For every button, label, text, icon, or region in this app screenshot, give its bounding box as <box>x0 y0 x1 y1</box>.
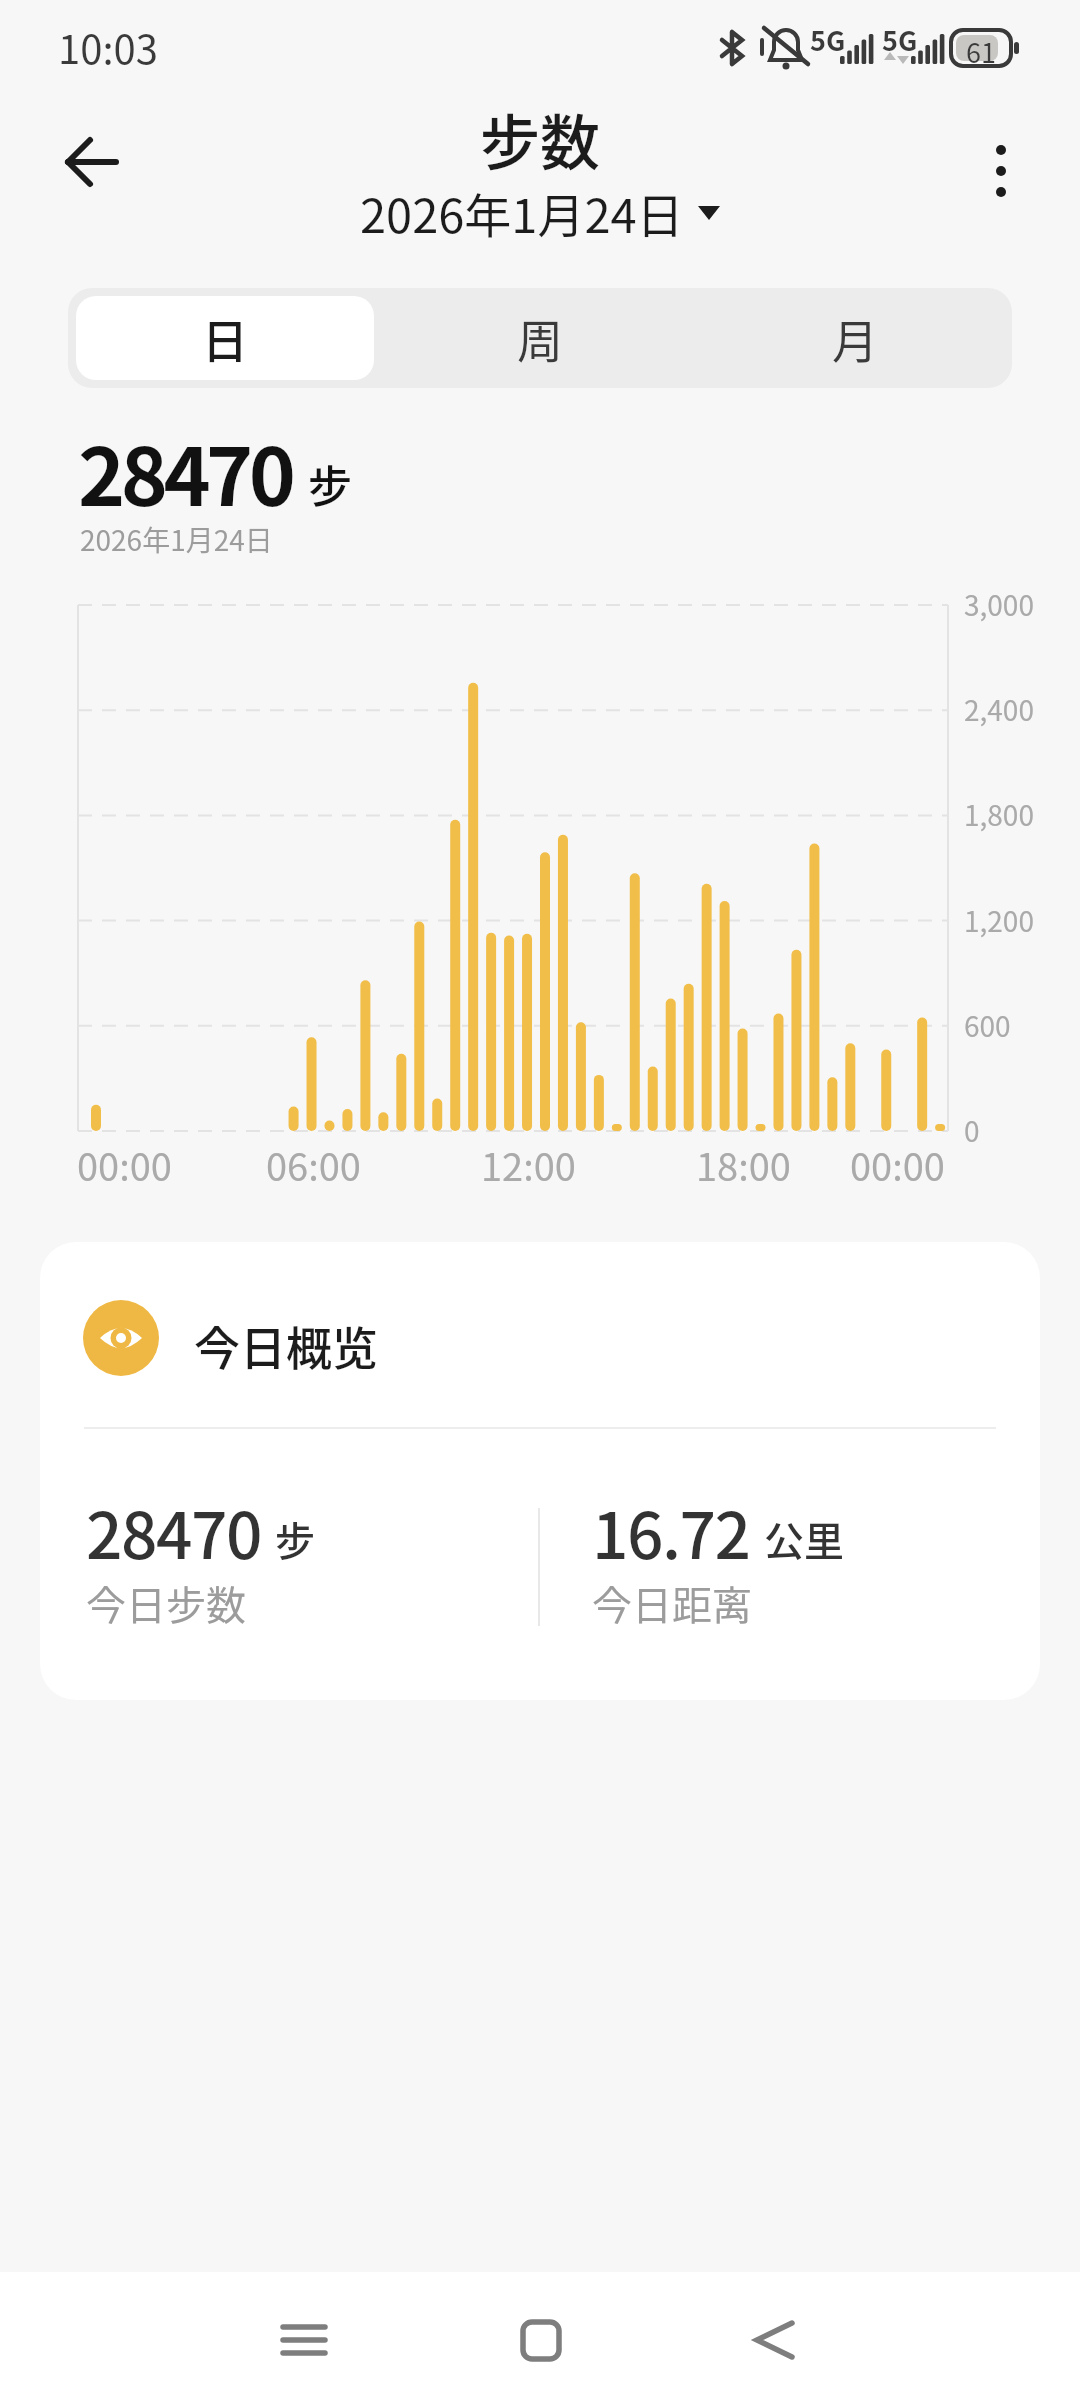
staticText: 2026年1月24日 <box>80 519 273 560</box>
staticText: 步数 <box>480 95 600 182</box>
staticText: 1,200 <box>964 900 1034 941</box>
staticText: 2026年1月24日 <box>360 178 684 246</box>
staticText: 步 <box>308 452 352 516</box>
staticText: 3,000 <box>964 584 1034 625</box>
button[interactable] <box>260 2296 350 2376</box>
staticText: 周 <box>517 305 563 372</box>
button[interactable] <box>496 2296 586 2376</box>
staticText: 步 <box>275 1510 315 1568</box>
staticText: 10:03 <box>58 18 158 76</box>
staticText: 今日距离 <box>592 1574 752 1632</box>
staticText: 月 <box>832 305 878 372</box>
staticText: 公里 <box>764 1510 844 1568</box>
button[interactable] <box>955 125 1045 215</box>
staticText: 28470 <box>78 413 292 529</box>
button[interactable]: 月 <box>697 288 1012 388</box>
staticText: 12:00 <box>481 1137 576 1192</box>
staticText: 今日步数 <box>86 1574 246 1632</box>
staticText: 06:00 <box>266 1137 361 1192</box>
staticText: 18:00 <box>696 1137 791 1192</box>
staticText: 00:00 <box>77 1137 172 1192</box>
staticText: 0 <box>964 1110 980 1151</box>
staticText: 600 <box>964 1005 1011 1046</box>
staticText: 28470 <box>86 1485 261 1578</box>
staticText: 00:00 <box>850 1137 945 1192</box>
button[interactable]: 日 <box>76 296 374 380</box>
button[interactable]: 周 <box>382 288 697 388</box>
staticText: 16.72 <box>592 1485 750 1578</box>
staticText: 2,400 <box>964 689 1034 730</box>
staticText: 5G <box>810 20 846 59</box>
staticText: 今日概览 <box>194 1312 378 1379</box>
button[interactable] <box>730 2296 820 2376</box>
staticText: 日 <box>202 305 248 372</box>
staticText: 5G <box>882 20 918 59</box>
staticText: 1,800 <box>964 794 1034 835</box>
button[interactable] <box>48 120 138 210</box>
staticText: 61 <box>966 32 996 71</box>
button[interactable]: 今日概览 <box>40 1242 1040 1700</box>
button[interactable]: 2026年1月24日 <box>360 178 720 246</box>
